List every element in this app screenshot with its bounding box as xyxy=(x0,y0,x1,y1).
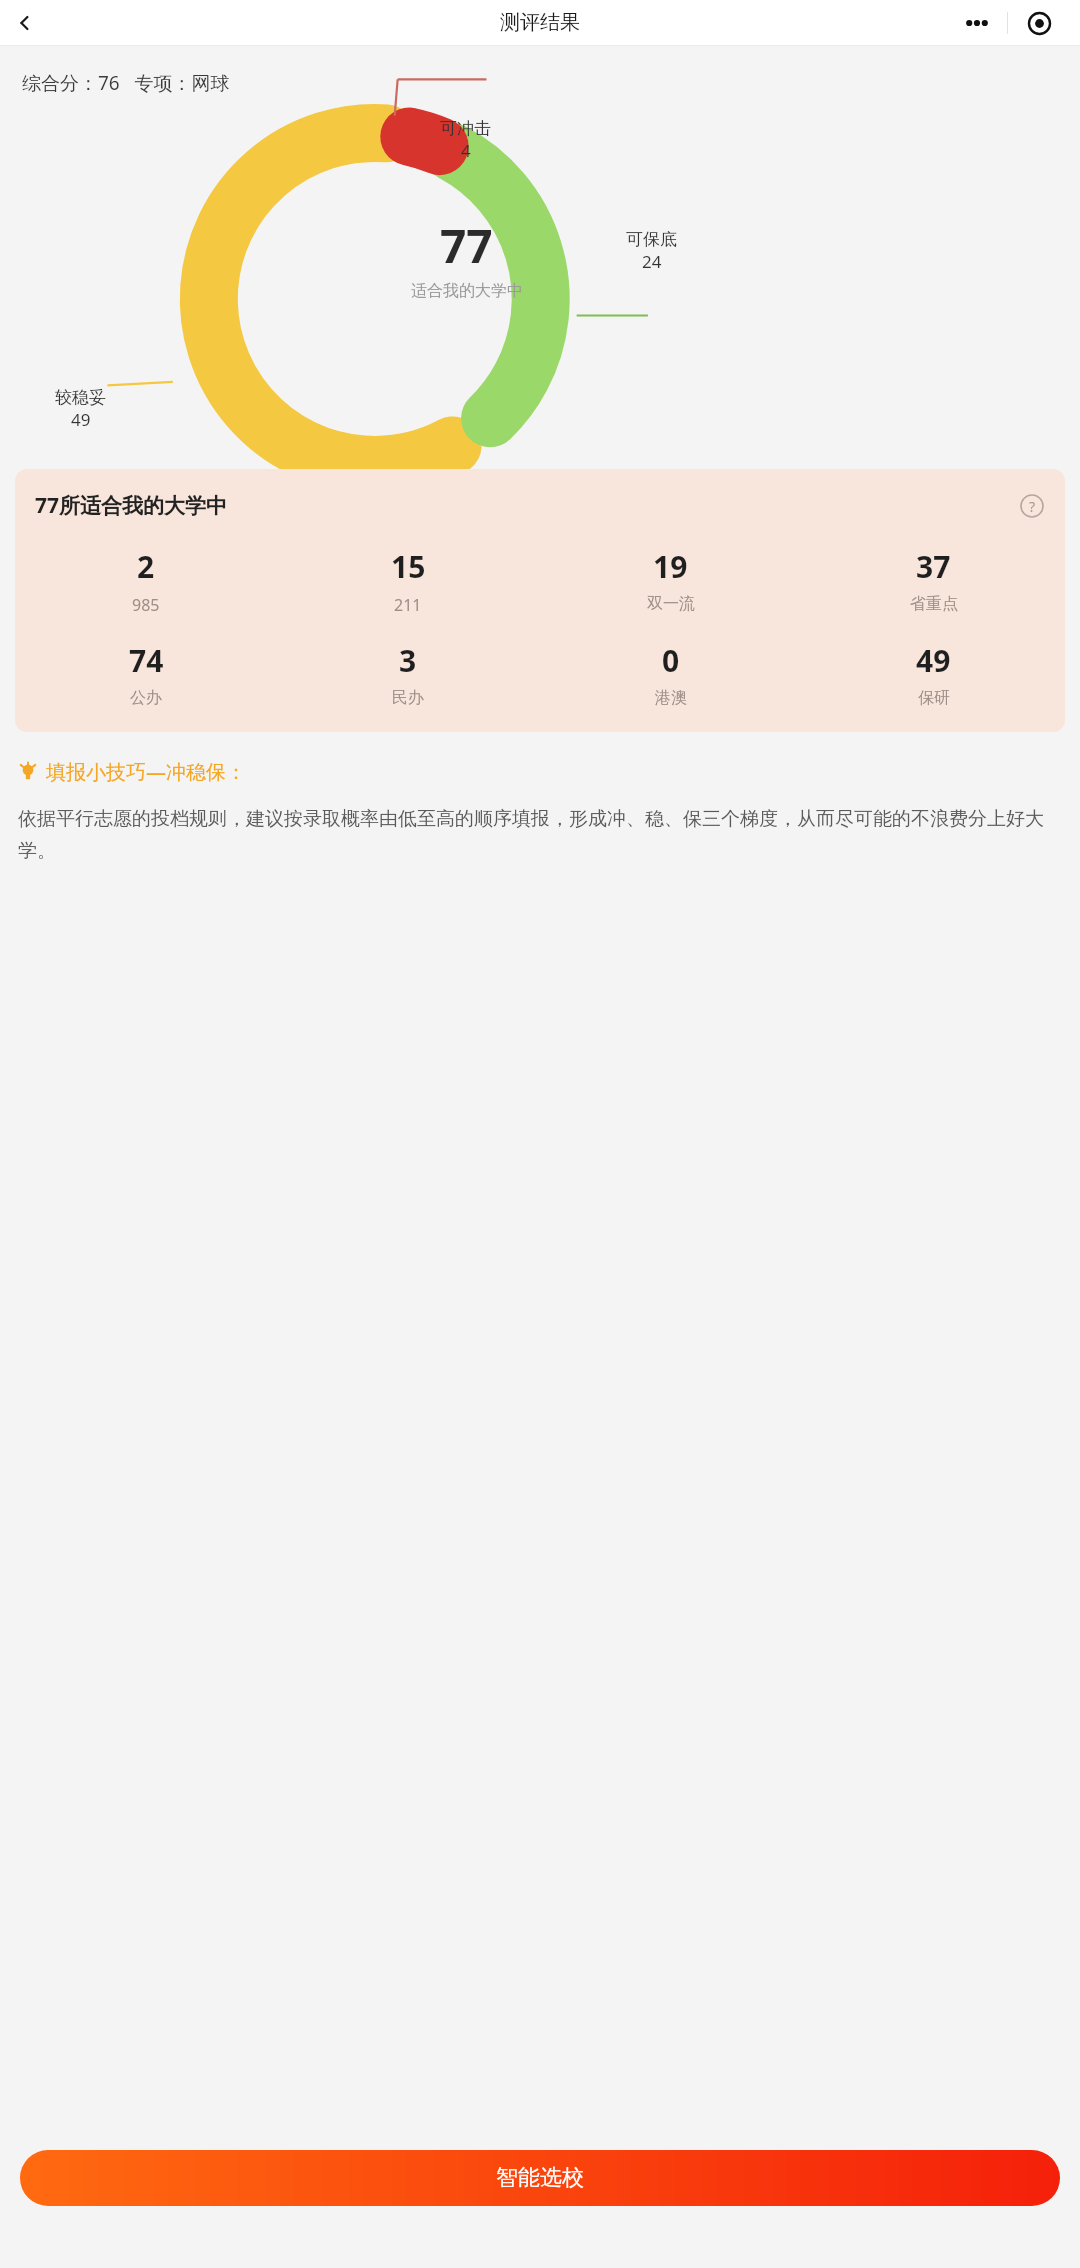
staticText: 港澳 xyxy=(655,688,687,708)
button[interactable]: 19 xyxy=(539,546,802,614)
staticText: 37 xyxy=(916,546,951,587)
button[interactable]: Back xyxy=(4,2,46,44)
button[interactable]: 2 xyxy=(15,546,277,616)
staticText: 2 xyxy=(137,546,155,587)
staticText: 15 xyxy=(391,546,426,587)
staticText: 4 xyxy=(461,139,471,162)
button[interactable]: 49 xyxy=(802,640,1065,708)
staticText: 可冲击 xyxy=(440,118,491,139)
button[interactable]: 74 xyxy=(15,640,277,708)
staticText: 可保底 xyxy=(626,229,677,250)
staticText: 3 xyxy=(399,640,417,681)
button[interactable]: 15 xyxy=(277,546,539,616)
staticText: 依据平行志愿的投档规则，建议按录取概率由低至高的顺序填报，形成冲、稳、保三个梯度… xyxy=(18,807,1062,863)
staticText: 民办 xyxy=(392,688,424,708)
staticText: 测评结果 xyxy=(500,10,580,35)
staticText: 49 xyxy=(916,640,951,681)
staticText: 985 xyxy=(132,594,160,616)
button[interactable]: Help xyxy=(1019,493,1045,519)
button[interactable]: 智能选校 xyxy=(20,2150,1060,2206)
staticText: 0 xyxy=(662,640,680,681)
button[interactable]: 3 xyxy=(277,640,539,708)
staticText: 省重点 xyxy=(910,594,958,614)
staticText: 智能选校 xyxy=(496,2164,584,2192)
staticText: 填报小技巧—冲稳保： xyxy=(46,758,246,785)
staticText: 77所适合我的大学中 xyxy=(35,491,228,520)
staticText: 较稳妥 xyxy=(55,387,106,408)
staticText: 19 xyxy=(653,546,688,587)
staticText: 保研 xyxy=(918,688,950,708)
button[interactable]: 0 xyxy=(539,640,802,708)
staticText: 211 xyxy=(394,594,422,616)
staticText: 49 xyxy=(71,408,91,431)
staticText: 77 xyxy=(440,214,493,277)
staticText: ? xyxy=(1029,497,1036,516)
staticText: 适合我的大学中 xyxy=(411,281,523,301)
staticText: 综合分：76 专项：网球 xyxy=(22,70,230,96)
button[interactable]: More options xyxy=(946,1,1070,45)
staticText: 24 xyxy=(642,250,662,273)
staticText: 公办 xyxy=(130,688,162,708)
staticText: 74 xyxy=(129,640,164,681)
button[interactable]: 77所适合我的大学中 xyxy=(15,469,1065,732)
button[interactable]: 37 xyxy=(802,546,1065,614)
staticText: 双一流 xyxy=(647,594,695,614)
